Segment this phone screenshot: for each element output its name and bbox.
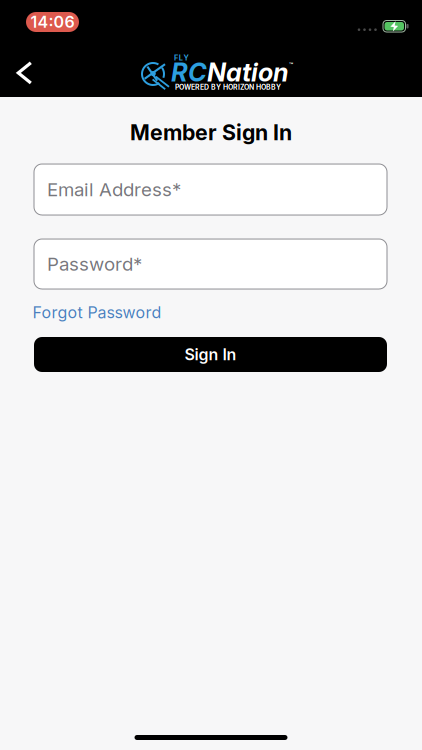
staticText: ™ [289,61,293,69]
staticText: Password* [47,253,142,275]
staticText: FLY [174,53,189,62]
button[interactable]: Forgot Password [32,303,161,322]
staticText: Sign In [184,345,236,364]
button[interactable]: Email Address [34,164,387,215]
staticText: Forgot Password [32,303,161,322]
staticText: Email Address* [47,178,181,200]
staticText: Member Sign In [130,120,292,145]
button[interactable]: Sign In [34,337,387,372]
staticText: POWERED BY HORIZON HOBBY [175,83,281,91]
staticText: 14:06 [30,13,74,31]
staticText: Nation [207,57,289,88]
staticText: RC [171,57,207,88]
button[interactable]: Password [34,239,387,289]
button[interactable]: Back [4,53,48,93]
